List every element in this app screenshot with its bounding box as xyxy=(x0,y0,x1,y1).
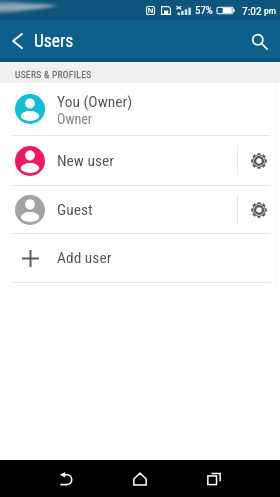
button[interactable]: Recent apps xyxy=(196,460,232,497)
staticText: Add user xyxy=(57,249,112,267)
staticText: USERS & PROFILES xyxy=(15,69,92,80)
staticText: Owner xyxy=(57,111,93,127)
button[interactable]: Search xyxy=(238,20,280,62)
button[interactable]: Home xyxy=(122,460,158,497)
staticText: New user xyxy=(57,152,115,170)
staticText: 57% xyxy=(195,4,213,17)
button[interactable]: Back xyxy=(48,460,84,497)
button[interactable]: Navigate up xyxy=(0,20,34,62)
button[interactable]: User settings xyxy=(238,136,280,185)
staticText: 7:02 xyxy=(242,4,262,17)
staticText: Guest xyxy=(57,201,93,219)
button[interactable]: Guest xyxy=(0,186,280,233)
button[interactable]: You (Owner) xyxy=(0,83,280,135)
button[interactable]: User settings xyxy=(238,186,280,233)
button[interactable]: New user xyxy=(0,136,280,185)
staticText: Users xyxy=(34,31,74,52)
button[interactable]: Add user xyxy=(0,234,280,282)
staticText: You (Owner) xyxy=(57,93,133,111)
staticText: pm xyxy=(264,5,276,16)
